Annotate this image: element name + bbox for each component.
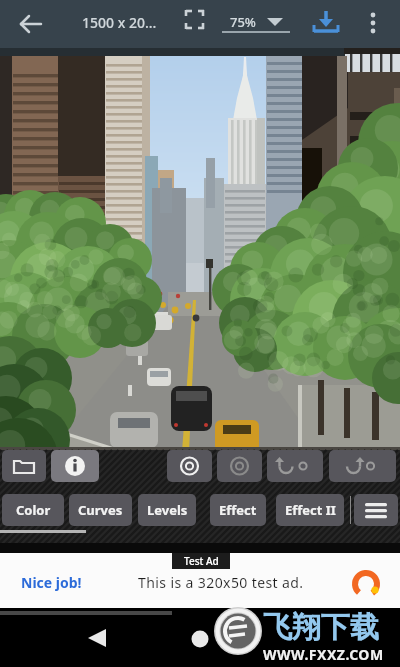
- button[interactable]: Levels: [138, 494, 196, 526]
- button[interactable]: Curves: [69, 494, 132, 526]
- button[interactable]: [329, 450, 396, 482]
- button[interactable]: 75%: [222, 6, 290, 40]
- staticText: This is a 320x50 test ad.: [138, 573, 304, 592]
- button[interactable]: [78, 622, 118, 656]
- staticText: 飞翔下载: [263, 609, 379, 646]
- button[interactable]: [308, 6, 344, 40]
- staticText: Levels: [147, 501, 188, 519]
- staticText: Color: [16, 501, 51, 519]
- button[interactable]: [14, 8, 50, 42]
- button[interactable]: Effect II: [276, 494, 344, 526]
- staticText: WWW.FXXZ.COM: [263, 645, 384, 664]
- staticText: Curves: [78, 501, 123, 519]
- button[interactable]: [217, 450, 262, 482]
- button[interactable]: [360, 6, 388, 40]
- staticText: Test Ad: [184, 554, 219, 568]
- staticText: 1500 x 20...: [82, 13, 157, 32]
- button[interactable]: [267, 450, 323, 482]
- button[interactable]: [167, 450, 212, 482]
- staticText: Effect II: [285, 501, 336, 519]
- button[interactable]: [51, 450, 99, 482]
- staticText: Nice job!: [21, 573, 82, 592]
- button[interactable]: [182, 622, 218, 656]
- button[interactable]: Color: [2, 494, 64, 526]
- button[interactable]: Test Ad: [0, 553, 400, 608]
- button[interactable]: Effect: [210, 494, 266, 526]
- staticText: 75%: [230, 13, 256, 31]
- button[interactable]: [354, 494, 398, 526]
- button[interactable]: [2, 450, 46, 482]
- staticText: Effect: [219, 501, 257, 519]
